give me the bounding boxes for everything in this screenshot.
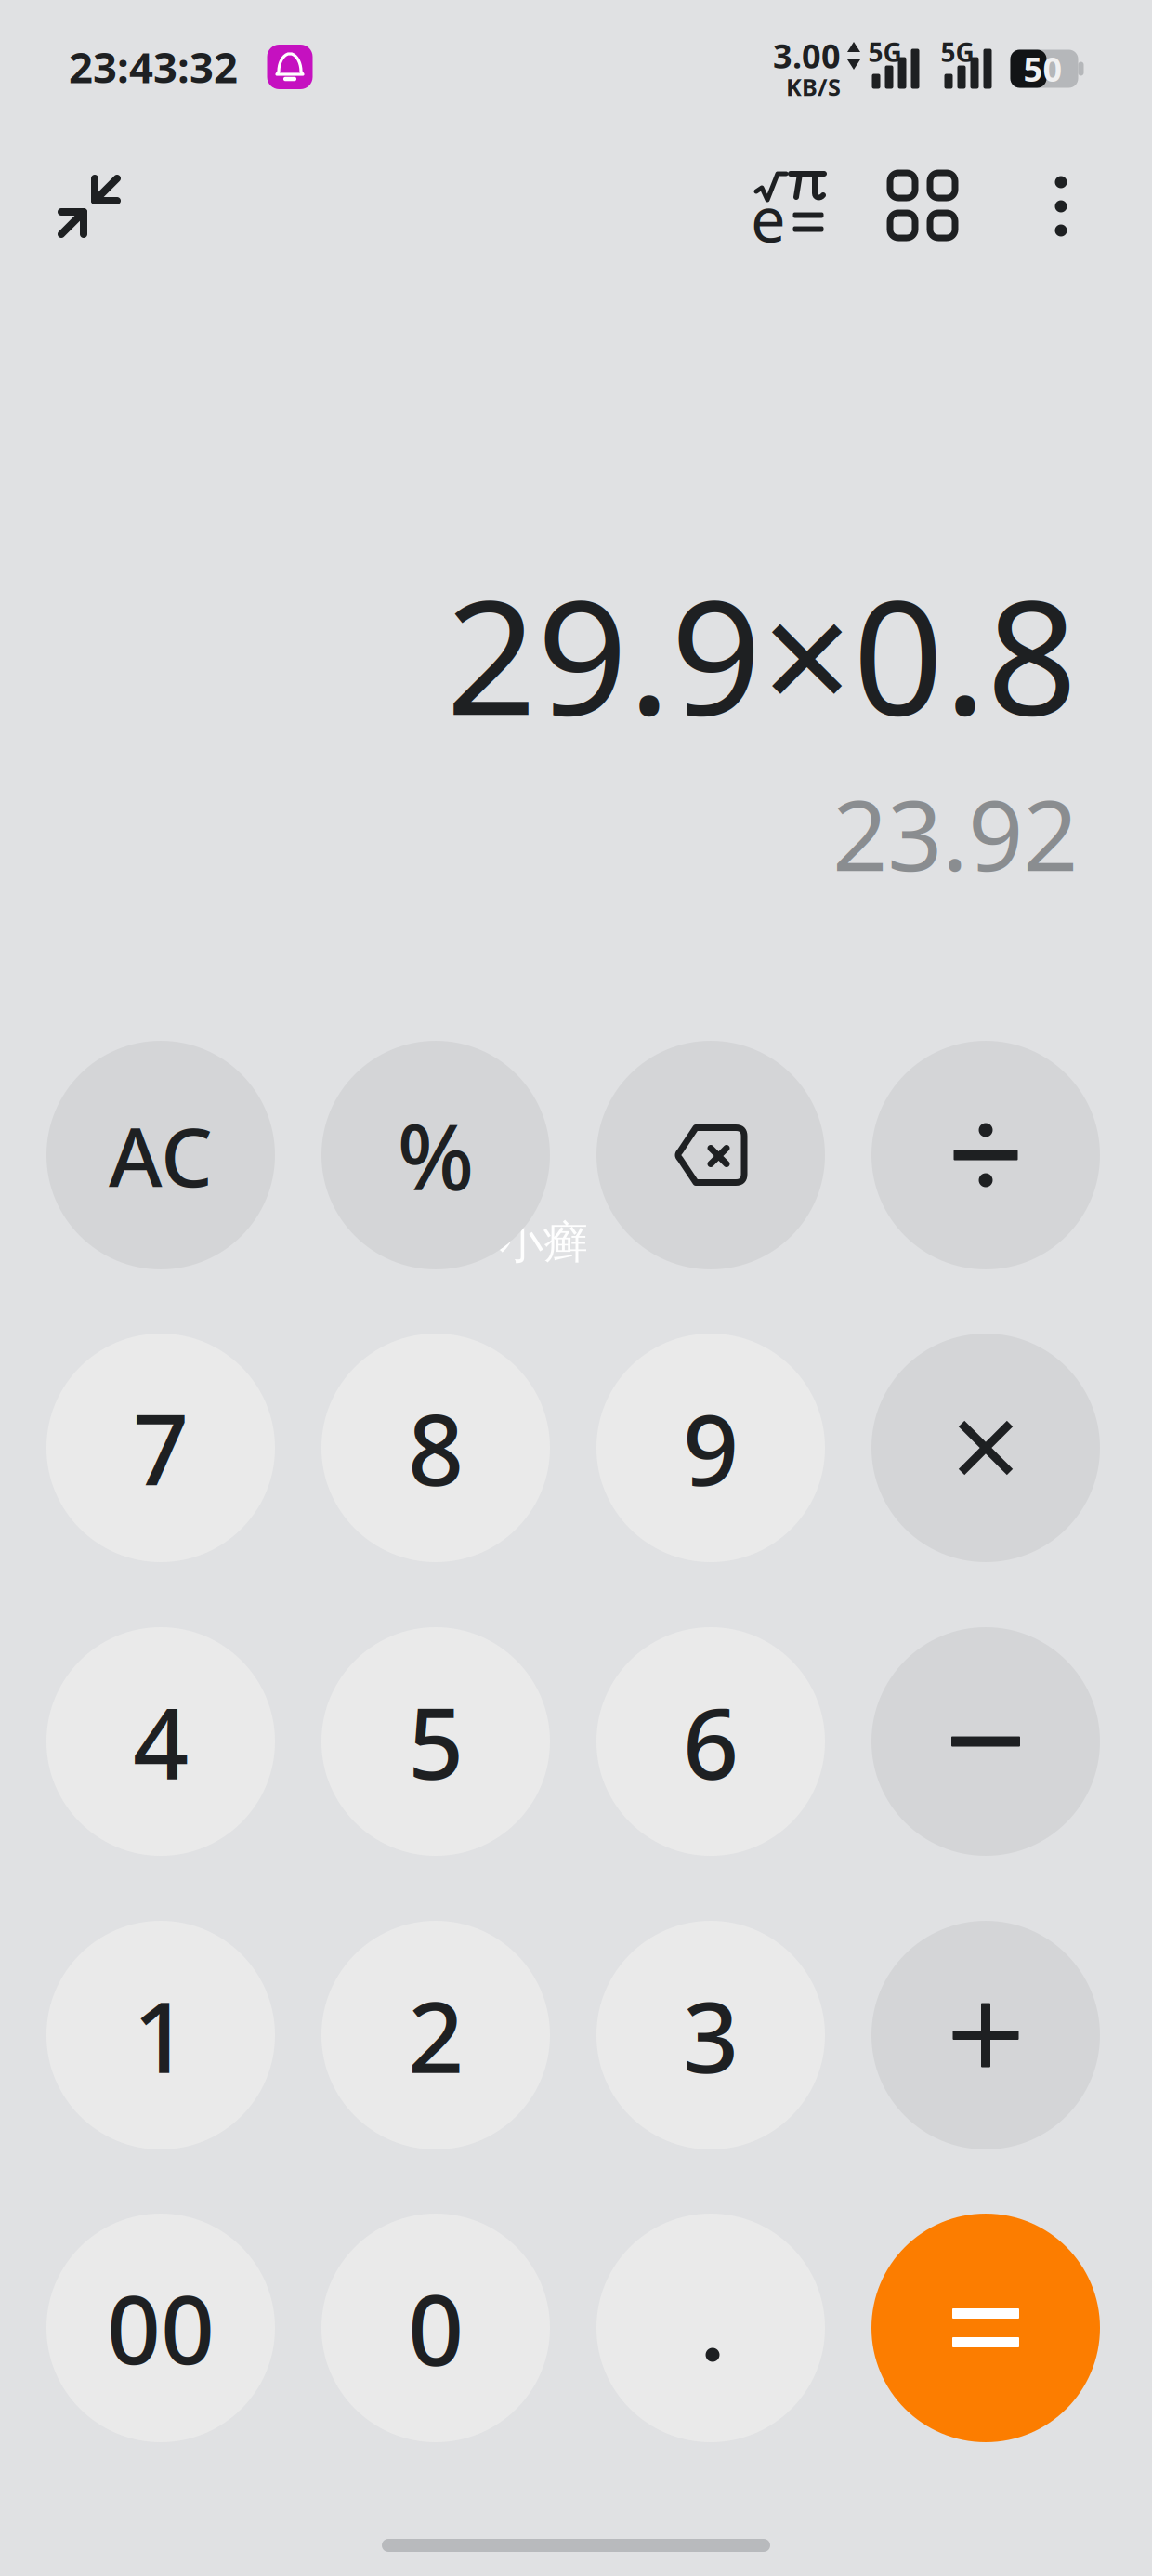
- staticText: %: [397, 1095, 474, 1215]
- button[interactable]: 8: [321, 1334, 550, 1562]
- button[interactable]: 0: [321, 2214, 550, 2442]
- button[interactable]: Equals: [871, 2214, 1100, 2442]
- staticText: 29.9×0.8: [446, 548, 1078, 759]
- staticText: 5G: [868, 35, 902, 69]
- staticText: 2: [408, 1970, 464, 2100]
- button[interactable]: 7: [46, 1334, 275, 1562]
- staticText: e: [751, 177, 786, 259]
- staticText: 1: [133, 1970, 189, 2100]
- button[interactable]: Add: [871, 1921, 1100, 2149]
- button[interactable]: Collapse: [34, 151, 146, 262]
- button[interactable]: Delete: [596, 1041, 825, 1269]
- button[interactable]: 5: [321, 1627, 550, 1856]
- button[interactable]: Unit converter: [862, 150, 983, 261]
- staticText: KB/S: [786, 71, 841, 102]
- staticText: 23.92: [832, 769, 1078, 898]
- button[interactable]: Multiply: [871, 1334, 1100, 1562]
- staticText: AC: [109, 1101, 213, 1209]
- button[interactable]: %: [321, 1041, 550, 1269]
- button[interactable]: 6: [596, 1627, 825, 1856]
- staticText: 6: [683, 1677, 739, 1807]
- staticText: 8: [408, 1383, 464, 1513]
- button[interactable]: Divide: [871, 1041, 1100, 1269]
- button[interactable]: AC: [46, 1041, 275, 1269]
- staticText: 7: [133, 1383, 189, 1513]
- staticText: 5: [408, 1677, 464, 1807]
- button[interactable]: 9: [596, 1334, 825, 1562]
- staticText: 0: [408, 2263, 464, 2393]
- button[interactable]: More options: [1010, 151, 1112, 262]
- button[interactable]: 4: [46, 1627, 275, 1856]
- staticText: 3: [683, 1970, 739, 2100]
- staticText: 3.00: [773, 33, 841, 78]
- button[interactable]: 00: [46, 2214, 275, 2442]
- staticText: 50: [1023, 47, 1062, 91]
- staticText: 5G: [941, 35, 974, 69]
- button[interactable]: 3: [596, 1921, 825, 2149]
- button[interactable]: Subtract: [871, 1627, 1100, 1856]
- button[interactable]: Scientific mode: [729, 150, 850, 261]
- staticText: 4: [133, 1677, 189, 1807]
- staticText: 9: [683, 1383, 739, 1513]
- button[interactable]: 1: [46, 1921, 275, 2149]
- staticText: 00: [107, 2265, 215, 2390]
- staticText: 小癣: [499, 1215, 588, 1270]
- staticText: 23:43:32: [69, 39, 238, 95]
- button[interactable]: 2: [321, 1921, 550, 2149]
- button[interactable]: Decimal point: [596, 2214, 825, 2442]
